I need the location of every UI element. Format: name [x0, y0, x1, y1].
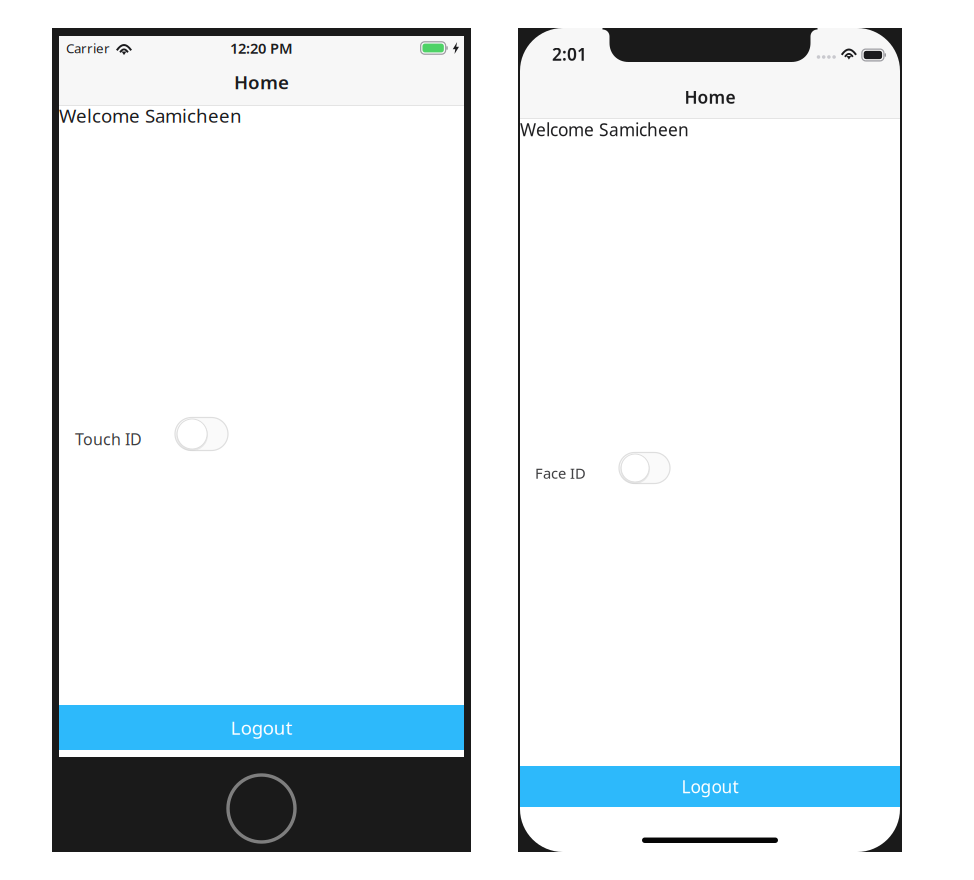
staticText: 12:20 PM	[230, 38, 293, 58]
button[interactable]: Face ID	[619, 452, 670, 483]
staticText: Touch ID	[75, 428, 142, 450]
button[interactable]: Logout	[520, 766, 900, 807]
staticText: Home	[684, 85, 735, 108]
staticText: Carrier	[66, 39, 110, 57]
staticText: Face ID	[535, 463, 586, 483]
staticText: Logout	[230, 715, 292, 740]
staticText: Home	[234, 70, 289, 94]
staticText: 2:01	[552, 42, 587, 65]
button[interactable]: Touch ID	[175, 417, 228, 450]
staticText: Welcome Samicheen	[520, 118, 689, 141]
staticText: Logout	[681, 775, 738, 798]
button[interactable]: Logout	[59, 705, 464, 750]
staticText: Welcome Samicheen	[59, 103, 242, 128]
